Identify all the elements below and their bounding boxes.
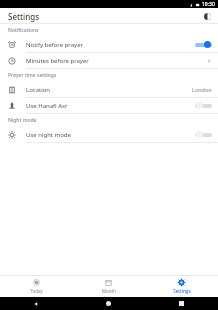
button[interactable] [195,130,212,139]
button[interactable]: Use night mode [0,127,218,142]
staticText: Use night mode [26,131,195,139]
staticText: Night mode [8,117,37,124]
button[interactable]: Settings [145,276,218,297]
other: Back [33,301,39,307]
staticText: London [192,86,212,93]
staticText: Month [102,288,116,294]
button[interactable]: Location [0,82,218,97]
button[interactable]: About [201,10,213,22]
staticText: Use Hanafi Asr [26,102,195,110]
button[interactable]: Month [72,276,145,297]
button[interactable] [195,101,212,110]
staticText: Settings [173,288,191,294]
staticText: Notify before prayer [26,41,195,49]
button[interactable]: Use Hanafi Asr [0,98,218,113]
staticText: Today [30,288,43,294]
staticText: Prayer time settings [8,72,57,79]
staticText: Settings [8,11,40,22]
staticText: Minutes before prayer [26,57,206,65]
staticText: Location [26,86,192,94]
button[interactable] [195,40,212,49]
staticText: 10:30 [202,1,215,8]
button[interactable]: Today [0,276,72,297]
staticText: Notifications [8,27,39,34]
button[interactable]: Notify before prayer [0,37,218,52]
other: Home [106,301,111,306]
button[interactable]: Minutes before prayer [0,53,218,68]
